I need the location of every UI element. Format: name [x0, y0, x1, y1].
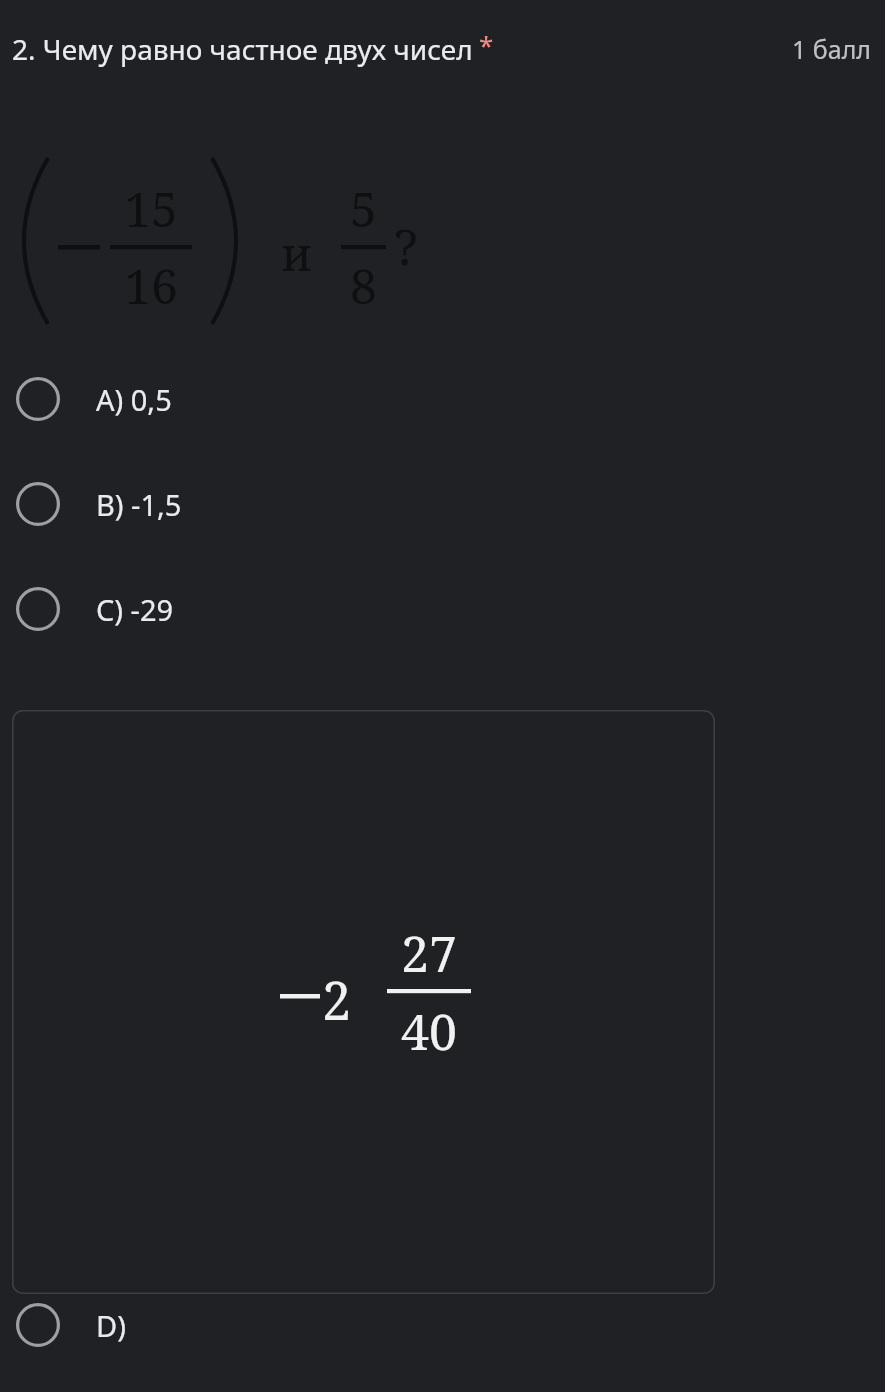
staticText: A) 0,5 — [96, 380, 172, 419]
button[interactable]: A) 0,5 — [0, 366, 885, 432]
staticText: 5 — [350, 176, 377, 241]
staticText: D) — [96, 1306, 126, 1345]
button[interactable]: C) -29 — [0, 576, 885, 642]
button[interactable]: B) -1,5 — [0, 471, 885, 537]
staticText: 2. Чему равно частное двух чисел — [12, 30, 473, 68]
button[interactable]: D) — [0, 1292, 885, 1358]
staticText: C) -29 — [96, 590, 174, 629]
staticText: 27 — [401, 919, 457, 985]
staticText: ? — [394, 212, 418, 280]
staticText: 15 — [124, 176, 178, 241]
staticText: 1 балл — [792, 32, 871, 66]
staticText: 16 — [124, 253, 178, 318]
staticText: * — [479, 27, 494, 62]
staticText: 40 — [401, 997, 457, 1063]
staticText: и — [281, 222, 313, 285]
button[interactable]: 2 — [12, 710, 715, 1294]
staticText: B) -1,5 — [96, 485, 182, 524]
staticText: 2 — [322, 964, 352, 1035]
staticText: 8 — [350, 253, 377, 318]
